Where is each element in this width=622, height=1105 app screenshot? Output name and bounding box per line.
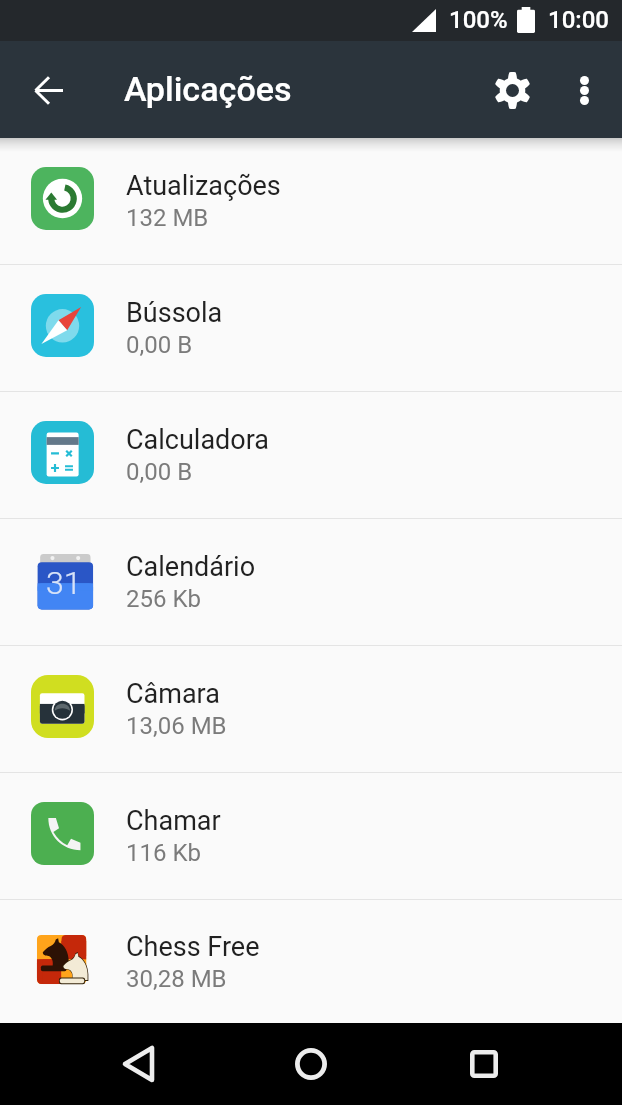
button[interactable]: Home	[271, 1024, 351, 1104]
staticText: Atualizações	[126, 170, 281, 202]
button[interactable]: 31	[0, 519, 622, 645]
button[interactable]: Calculadora	[0, 392, 622, 518]
staticText: Calculadora	[126, 424, 270, 456]
staticText: Aplicações	[124, 69, 292, 109]
staticText: 0,00 B	[126, 331, 193, 359]
staticText: Chess Free	[126, 931, 260, 963]
staticText: 100%	[449, 6, 508, 34]
staticText: 116 Kb	[126, 839, 201, 867]
staticText: 10:00	[548, 6, 609, 34]
staticText: 30,28 MB	[126, 965, 227, 993]
button[interactable]: Settings	[478, 56, 546, 124]
button[interactable]: Chamar	[0, 773, 622, 899]
staticText: Bússola	[126, 297, 223, 329]
staticText: Câmara	[126, 678, 220, 710]
staticText: 0,00 B	[126, 458, 193, 486]
button[interactable]: Back	[98, 1024, 178, 1104]
button[interactable]: Bússola	[0, 265, 622, 391]
button[interactable]: Câmara	[0, 646, 622, 772]
staticText: Calendário	[126, 551, 256, 583]
button[interactable]: Recents	[444, 1024, 524, 1104]
button[interactable]: Chess Free	[0, 900, 622, 1023]
staticText: 31	[46, 564, 82, 602]
button[interactable]: Atualizações	[0, 138, 622, 264]
staticText: 132 MB	[126, 204, 209, 232]
staticText: 13,06 MB	[126, 712, 227, 740]
button[interactable]: More options	[550, 56, 618, 124]
staticText: 256 Kb	[126, 585, 201, 613]
staticText: Chamar	[126, 805, 221, 837]
button[interactable]: Back	[15, 56, 83, 124]
